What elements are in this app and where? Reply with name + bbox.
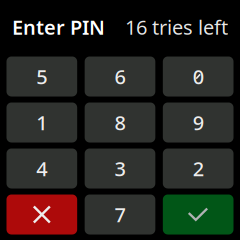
staticText: 8	[114, 109, 125, 136]
staticText: 6	[114, 63, 125, 90]
staticText: 4	[36, 155, 47, 182]
button[interactable]: 3	[85, 148, 155, 188]
button[interactable]: 6	[85, 56, 155, 96]
staticText: 7	[114, 201, 125, 228]
staticText: 9	[193, 109, 204, 136]
button[interactable]: 8	[85, 102, 155, 142]
button[interactable]: 7	[85, 194, 155, 234]
staticText: 5	[36, 63, 47, 90]
button[interactable]: Cancel	[6, 194, 77, 234]
button[interactable]: Confirm	[163, 194, 233, 234]
button[interactable]: 9	[163, 102, 233, 142]
staticText: 2	[193, 155, 204, 182]
staticText: 0	[193, 63, 204, 90]
button[interactable]: 2	[163, 148, 233, 188]
button[interactable]: 4	[6, 148, 77, 188]
staticText: 1	[36, 109, 47, 136]
button[interactable]: 0	[163, 56, 233, 96]
button[interactable]: 1	[6, 102, 77, 142]
button[interactable]: 5	[6, 56, 77, 96]
staticText: 3	[114, 155, 125, 182]
staticText: 16 tries left	[125, 14, 228, 40]
staticText: Enter PIN	[12, 14, 105, 40]
